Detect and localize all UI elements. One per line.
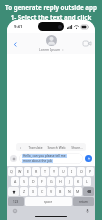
staticText: Q <box>10 169 13 174</box>
button[interactable]: Previous <box>16 143 25 151</box>
staticText: V <box>50 189 53 194</box>
button[interactable]: O <box>77 167 85 176</box>
button[interactable]: Back <box>10 39 20 49</box>
button[interactable]: W <box>16 167 23 176</box>
staticText: Hello, can you please tell me <box>23 154 66 158</box>
button[interactable]: J <box>65 177 73 186</box>
button[interactable]: M <box>74 187 82 196</box>
button[interactable]: Share... <box>68 143 86 151</box>
button[interactable]: T <box>41 167 49 176</box>
button[interactable]: S <box>20 177 28 186</box>
staticText: To generate reply outside app <box>5 3 97 11</box>
staticText: S <box>23 179 25 184</box>
button[interactable]: Send <box>85 155 92 162</box>
button[interactable]: E <box>24 167 31 176</box>
staticText: more about the job <box>23 159 52 163</box>
staticText: X <box>32 189 35 194</box>
staticText: W <box>18 169 22 174</box>
button[interactable]: Q <box>8 167 15 176</box>
staticText: B <box>59 189 62 194</box>
button[interactable]: F <box>38 177 46 186</box>
button[interactable]: 123 <box>8 197 24 206</box>
staticText: N <box>68 189 71 194</box>
staticText: ‹ <box>20 145 22 150</box>
button[interactable]: Translate <box>25 143 45 151</box>
button[interactable]: C <box>38 187 46 196</box>
staticText: T <box>44 169 46 174</box>
staticText: return <box>79 200 88 204</box>
button[interactable]: Z <box>20 187 28 196</box>
staticText: Share... <box>71 145 83 149</box>
button[interactable]: G <box>47 177 55 186</box>
button[interactable]: L <box>83 177 91 186</box>
staticText: G <box>50 179 53 184</box>
staticText: I <box>71 169 73 174</box>
button[interactable]: Delete <box>83 187 94 196</box>
button[interactable]: D <box>29 177 37 186</box>
button[interactable]: H <box>56 177 64 186</box>
button[interactable]: B <box>56 187 64 196</box>
staticText: 1- Select the text and click 'Share...' <box>4 13 98 29</box>
button[interactable]: U <box>59 167 67 176</box>
button[interactable]: Shift <box>8 187 19 196</box>
staticText: 123 <box>13 200 19 204</box>
button[interactable]: space <box>25 197 72 206</box>
button[interactable]: Search Web <box>45 143 68 151</box>
staticText: U <box>62 169 65 174</box>
staticText: space <box>44 200 53 204</box>
staticText: C <box>41 189 44 194</box>
button[interactable]: Lorem Ipsum <box>39 35 64 52</box>
button[interactable]: Video call <box>81 38 92 49</box>
button[interactable]: X <box>29 187 37 196</box>
staticText: K <box>77 179 80 184</box>
staticText: Z <box>23 189 26 194</box>
staticText: Lorem Ipsum <box>39 47 61 52</box>
button[interactable]: N <box>65 187 73 196</box>
staticText: E <box>27 169 29 174</box>
button[interactable]: R <box>32 167 40 176</box>
staticText: Search Web <box>47 145 66 149</box>
button[interactable]: Add attachment <box>10 155 17 162</box>
button[interactable]: I <box>68 167 76 176</box>
staticText: H <box>59 179 62 184</box>
staticText: Translate <box>28 145 43 149</box>
staticText: 9:41 <box>14 24 23 30</box>
staticText: R <box>35 169 38 174</box>
staticText: L <box>86 179 88 184</box>
button[interactable]: A <box>11 177 19 186</box>
staticText: Y <box>53 169 56 174</box>
button[interactable]: Emoji <box>12 208 17 213</box>
staticText: P <box>89 169 92 174</box>
staticText: J <box>69 179 70 184</box>
button[interactable]: K <box>74 177 82 186</box>
staticText: F <box>41 179 43 184</box>
button[interactable]: P <box>86 167 94 176</box>
staticText: A <box>14 179 17 184</box>
staticText: D <box>32 179 35 184</box>
button[interactable]: Y <box>50 167 58 176</box>
button[interactable]: V <box>47 187 55 196</box>
button[interactable]: Hello, can you please tell me <box>19 153 83 164</box>
button[interactable]: Dictate <box>85 208 90 213</box>
staticText: O <box>80 169 83 174</box>
button[interactable]: return <box>73 197 94 206</box>
staticText: M <box>76 189 80 194</box>
